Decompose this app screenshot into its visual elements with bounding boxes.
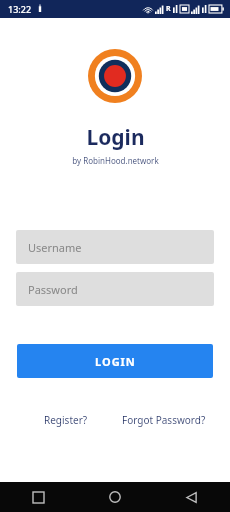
button[interactable]: Register? [17, 410, 115, 430]
staticText: Username [28, 240, 82, 255]
button[interactable]: Home [76, 482, 153, 512]
button[interactable]: Password [16, 272, 214, 306]
button[interactable]: Username [16, 230, 214, 264]
staticText: R [166, 4, 171, 14]
staticText: by RobinHood.network [72, 155, 159, 166]
button[interactable]: Forgot Password? [115, 410, 213, 430]
staticText: 13:22 [8, 3, 32, 15]
staticText: Login [86, 123, 145, 152]
button[interactable]: Back [153, 482, 230, 512]
staticText: Forgot Password? [122, 413, 206, 427]
staticText: Register? [44, 413, 88, 427]
staticText: LOGIN [95, 354, 136, 369]
button[interactable]: Recent apps [0, 482, 76, 512]
button[interactable]: LOGIN [17, 344, 213, 378]
staticText: Password [28, 282, 78, 297]
